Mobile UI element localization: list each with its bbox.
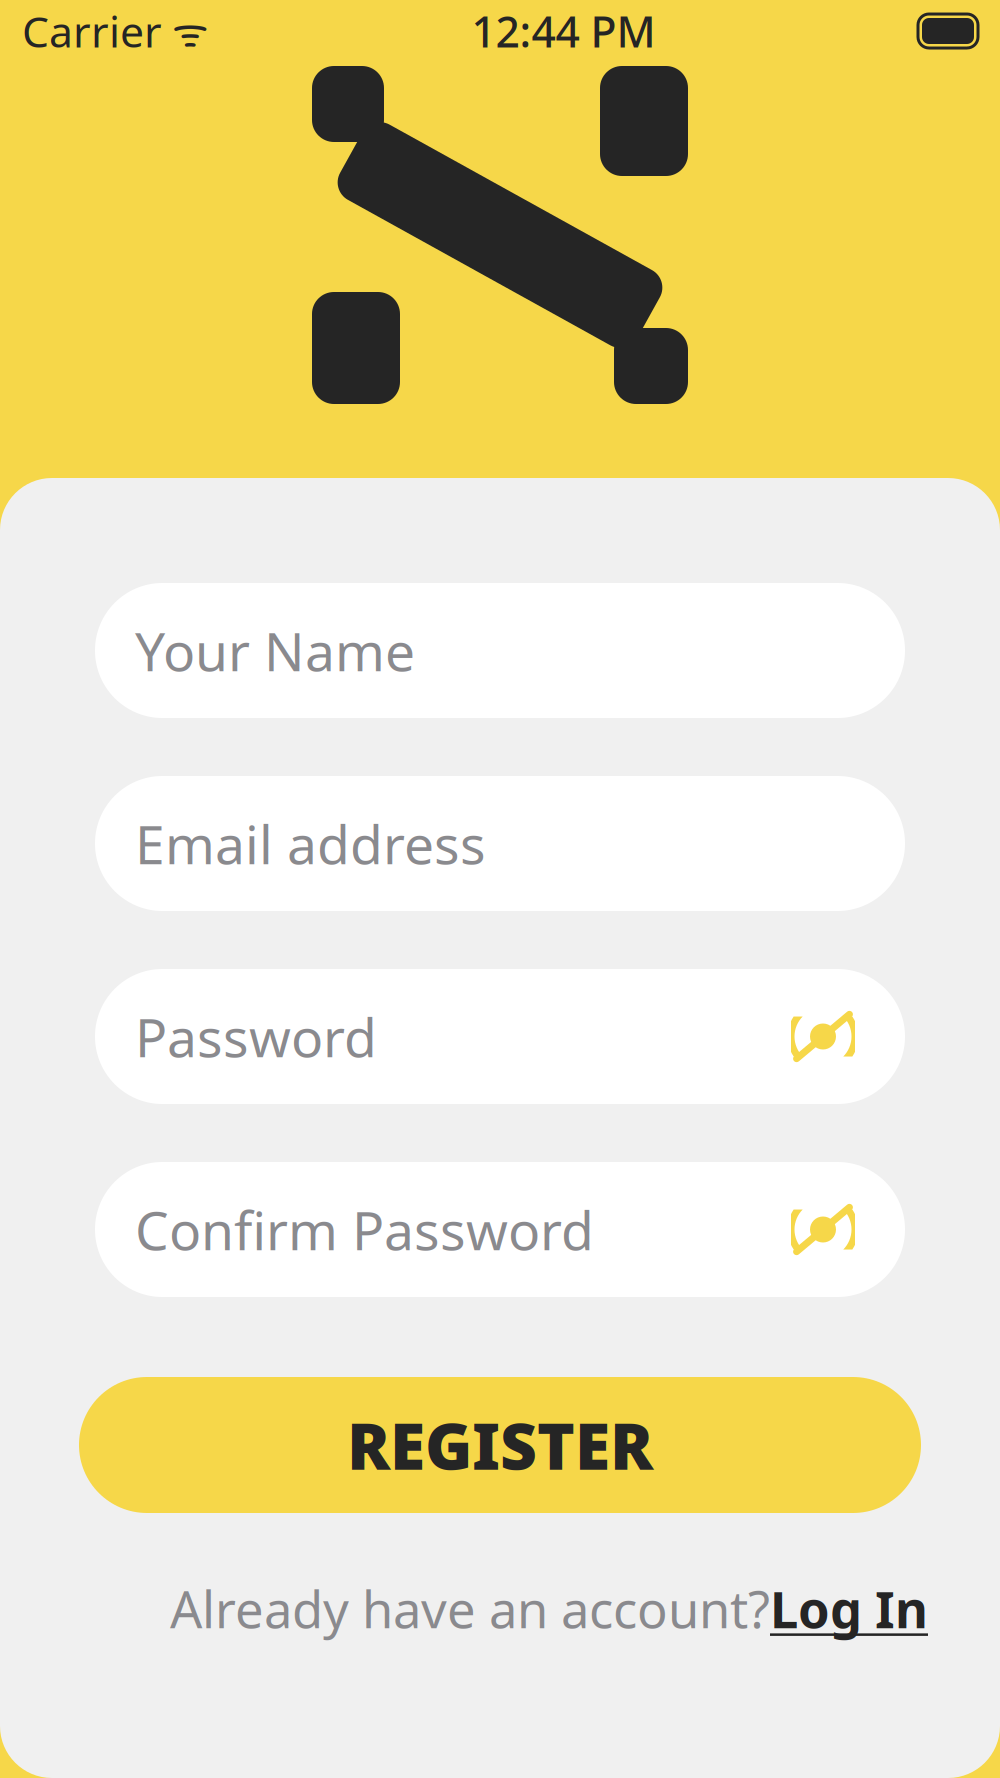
button[interactable]: Confirm Password (95, 1162, 905, 1297)
staticText: Carrier (22, 3, 162, 59)
button[interactable]: REGISTER (79, 1377, 921, 1513)
staticText: 12:44 PM (471, 3, 655, 59)
staticText: Already have an account? (170, 1575, 770, 1642)
staticText: REGISTER (347, 1402, 653, 1487)
button[interactable]: Password (95, 969, 905, 1104)
button[interactable]: Already have an account? (0, 1575, 1000, 1642)
button[interactable]: Your Name (95, 583, 905, 718)
staticText: Your Name (135, 615, 415, 686)
staticText: Email address (135, 808, 486, 879)
button[interactable]: Email address (95, 776, 905, 911)
staticText: Log In (770, 1575, 928, 1642)
staticText: Confirm Password (135, 1194, 594, 1265)
staticText: ᯤ (162, 4, 209, 57)
staticText: Password (135, 1001, 377, 1072)
